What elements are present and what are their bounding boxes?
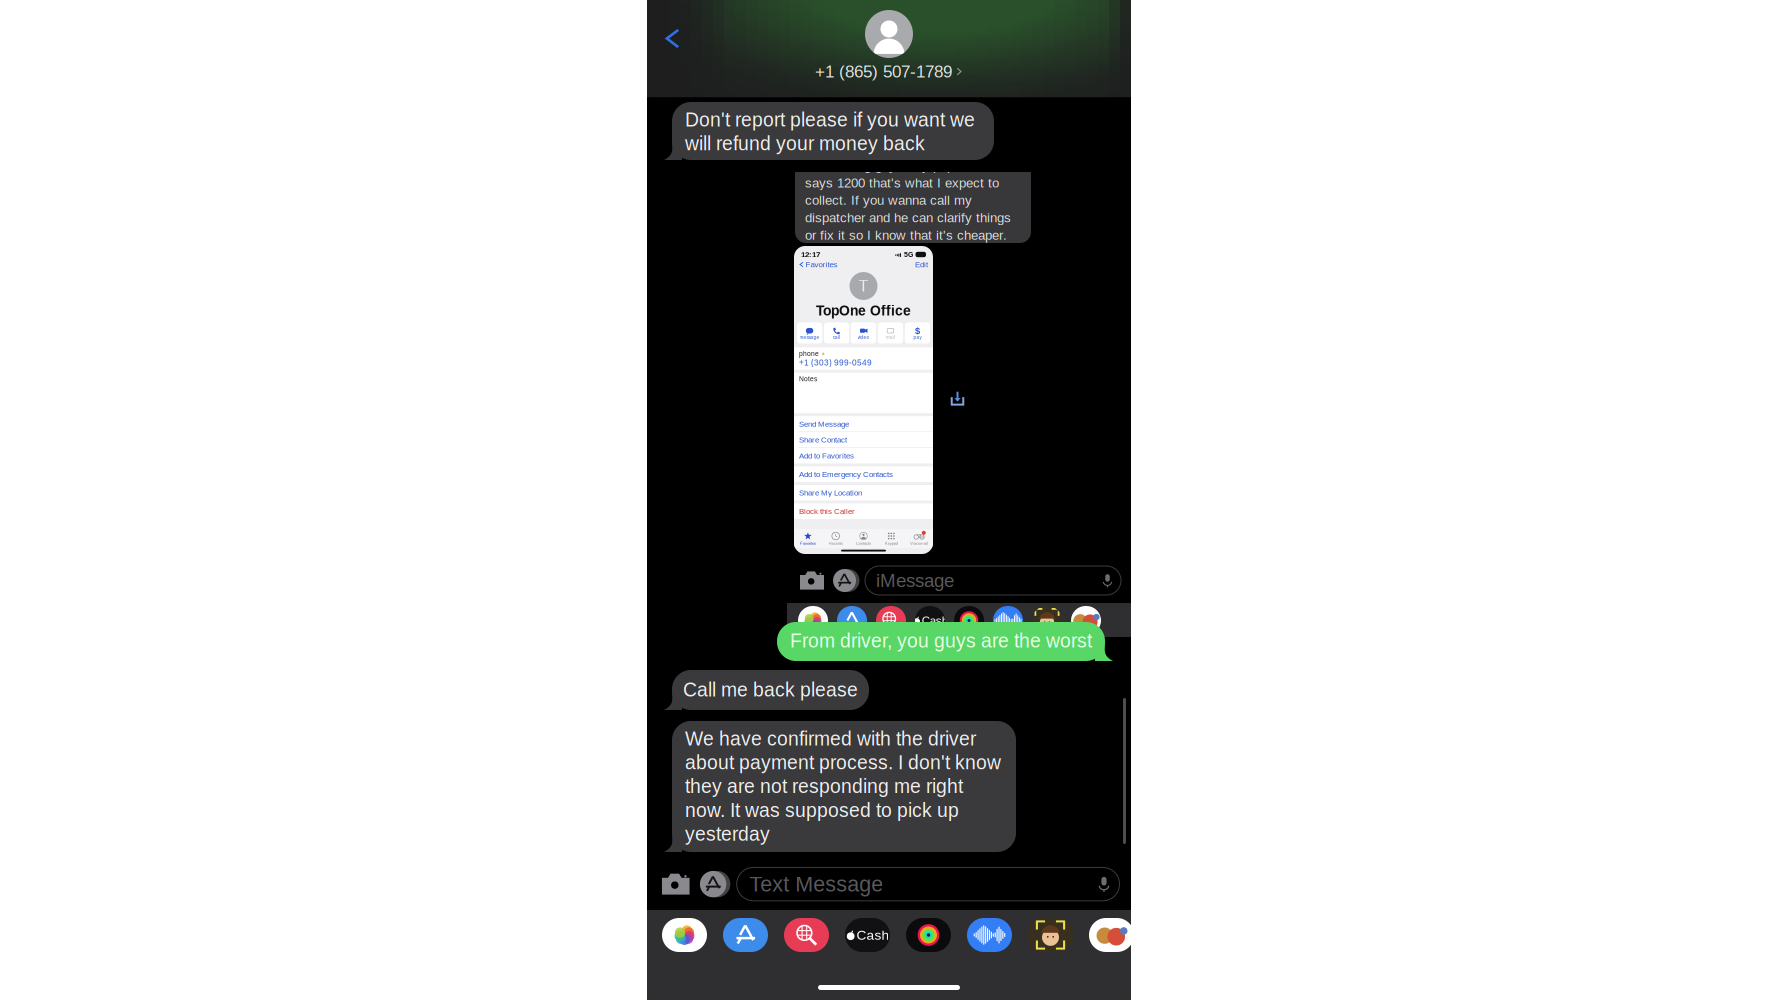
button[interactable]: Recent photo [1071,606,1101,635]
staticText: Keypad [885,541,898,546]
button[interactable]: Photos [662,918,707,952]
staticText: Send Message [799,419,849,428]
staticText: Contacts [856,541,871,546]
staticText: phone [799,350,819,357]
button[interactable]: iMessage apps [696,867,730,901]
staticText: mail [886,335,895,340]
button[interactable]: Photos [798,606,828,635]
button[interactable]: Images [784,918,829,952]
staticText: $ [915,325,920,336]
staticText: Cash [922,614,948,627]
staticText: we're doing guys, my paperwork says 1200… [805,158,1011,242]
button[interactable]: Apple Cash [915,606,945,635]
staticText: call [833,335,840,340]
button[interactable]: Fitness [954,606,984,635]
staticText: pay [913,335,921,340]
staticText: Share Contact [799,435,847,444]
button[interactable]: Voice Memos [967,918,1012,952]
button[interactable]: App Store [723,918,768,952]
staticText: Text Message [749,872,883,896]
staticText: Favorites [805,260,837,269]
staticText: Notes [799,375,817,383]
button[interactable]: Take photo [798,565,826,595]
staticText: TopOne Office [816,303,911,318]
button[interactable]: Memoji [1028,918,1073,952]
button[interactable]: Recent photo [1089,918,1134,952]
button[interactable]: Memoji [1032,606,1062,635]
staticText: Block this Caller [799,507,855,516]
button[interactable]: iMessage apps [830,565,859,595]
staticText: Voicemail [910,541,928,546]
staticText: From driver, you guys are the worst [790,630,1092,652]
staticText: 5G [904,251,913,258]
staticText: Favorites [800,541,816,546]
staticText: Edit [915,260,928,269]
staticText: video [857,335,869,340]
staticText: message [800,335,820,340]
staticText: +1 (865) 507-1789 [815,62,952,81]
button[interactable]: Take photo [660,867,692,901]
staticText: Don't report please if you want we will … [685,109,975,154]
staticText: We have confirmed with the driver about … [685,728,1001,845]
staticText: Cash [856,927,889,943]
staticText: 12:17 [801,250,820,259]
button[interactable]: Apple Cash [845,918,890,952]
staticText: Recents [829,541,843,546]
button[interactable]: App Store [837,606,867,635]
staticText: ★ [821,351,825,356]
button[interactable]: Voice Memos [993,606,1023,635]
button[interactable]: Fitness [906,918,951,952]
staticText: Share My Location [799,488,862,497]
button[interactable]: Back [647,17,696,60]
staticText: T [858,277,868,295]
button[interactable]: Save to Photos [949,390,966,407]
staticText: +1 (303) 999-0549 [799,358,872,367]
staticText: Call me back please [683,679,858,701]
staticText: Add to Emergency Contacts [799,470,893,479]
staticText: Add to Favorites [799,451,854,460]
staticText: iMessage [876,570,954,591]
button[interactable]: Images [876,606,906,635]
